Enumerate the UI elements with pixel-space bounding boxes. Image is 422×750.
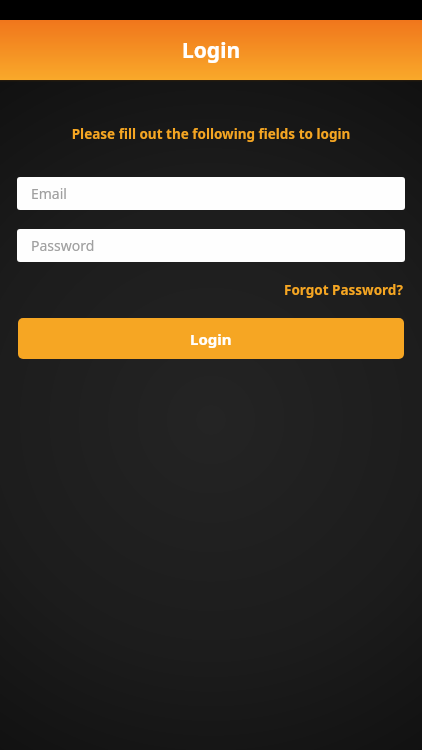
button[interactable]: Forgot Password?	[282, 278, 405, 302]
button[interactable]: Email	[17, 177, 405, 210]
staticText: Please fill out the following fields to …	[16, 125, 406, 143]
staticText: Email	[31, 184, 67, 203]
button[interactable]: Login	[18, 318, 404, 359]
button[interactable]: Password	[17, 229, 405, 262]
staticText: Login	[182, 36, 241, 65]
staticText: Forgot Password?	[284, 281, 403, 299]
staticText: Password	[31, 236, 95, 255]
staticText: Login	[190, 329, 232, 349]
